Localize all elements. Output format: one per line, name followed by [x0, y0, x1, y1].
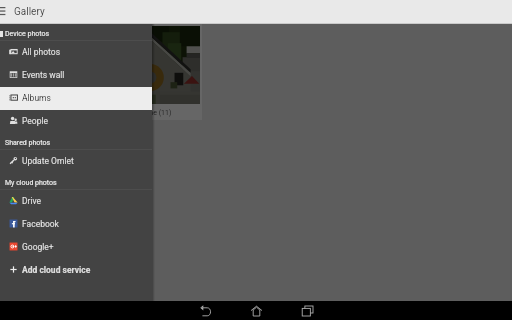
button[interactable]: All photos [0, 41, 152, 64]
staticText: Shared photos [5, 139, 51, 147]
staticText: Update Omlet [22, 156, 74, 166]
staticText: Drive [22, 196, 42, 206]
staticText: Facebook [22, 219, 59, 229]
staticText: Hakone (11) [133, 109, 172, 117]
staticText: People [22, 116, 49, 126]
staticText: Events wall [22, 70, 65, 80]
staticText: Albums [22, 93, 51, 103]
staticText: All photos [22, 47, 61, 57]
button[interactable]: Events wall [0, 64, 152, 87]
button[interactable]: Albums [0, 87, 152, 110]
button[interactable]: Google+ [0, 236, 152, 259]
staticText: Device photos [5, 30, 50, 38]
button[interactable]: Home [231, 301, 282, 320]
button[interactable]: Facebook [0, 213, 152, 236]
button[interactable]: Update Omlet [0, 150, 152, 173]
button[interactable]: Recents [282, 301, 333, 320]
button[interactable]: Add cloud service [0, 259, 152, 282]
button[interactable]: Drive [0, 190, 152, 213]
button[interactable]: Back [180, 301, 231, 320]
button[interactable]: People [0, 110, 152, 133]
staticText: My cloud photos [5, 179, 57, 187]
button[interactable]: Open navigation drawer [0, 0, 14, 24]
staticText: Add cloud service [22, 265, 91, 275]
staticText: Gallery [14, 6, 45, 18]
staticText: Google+ [22, 242, 54, 252]
